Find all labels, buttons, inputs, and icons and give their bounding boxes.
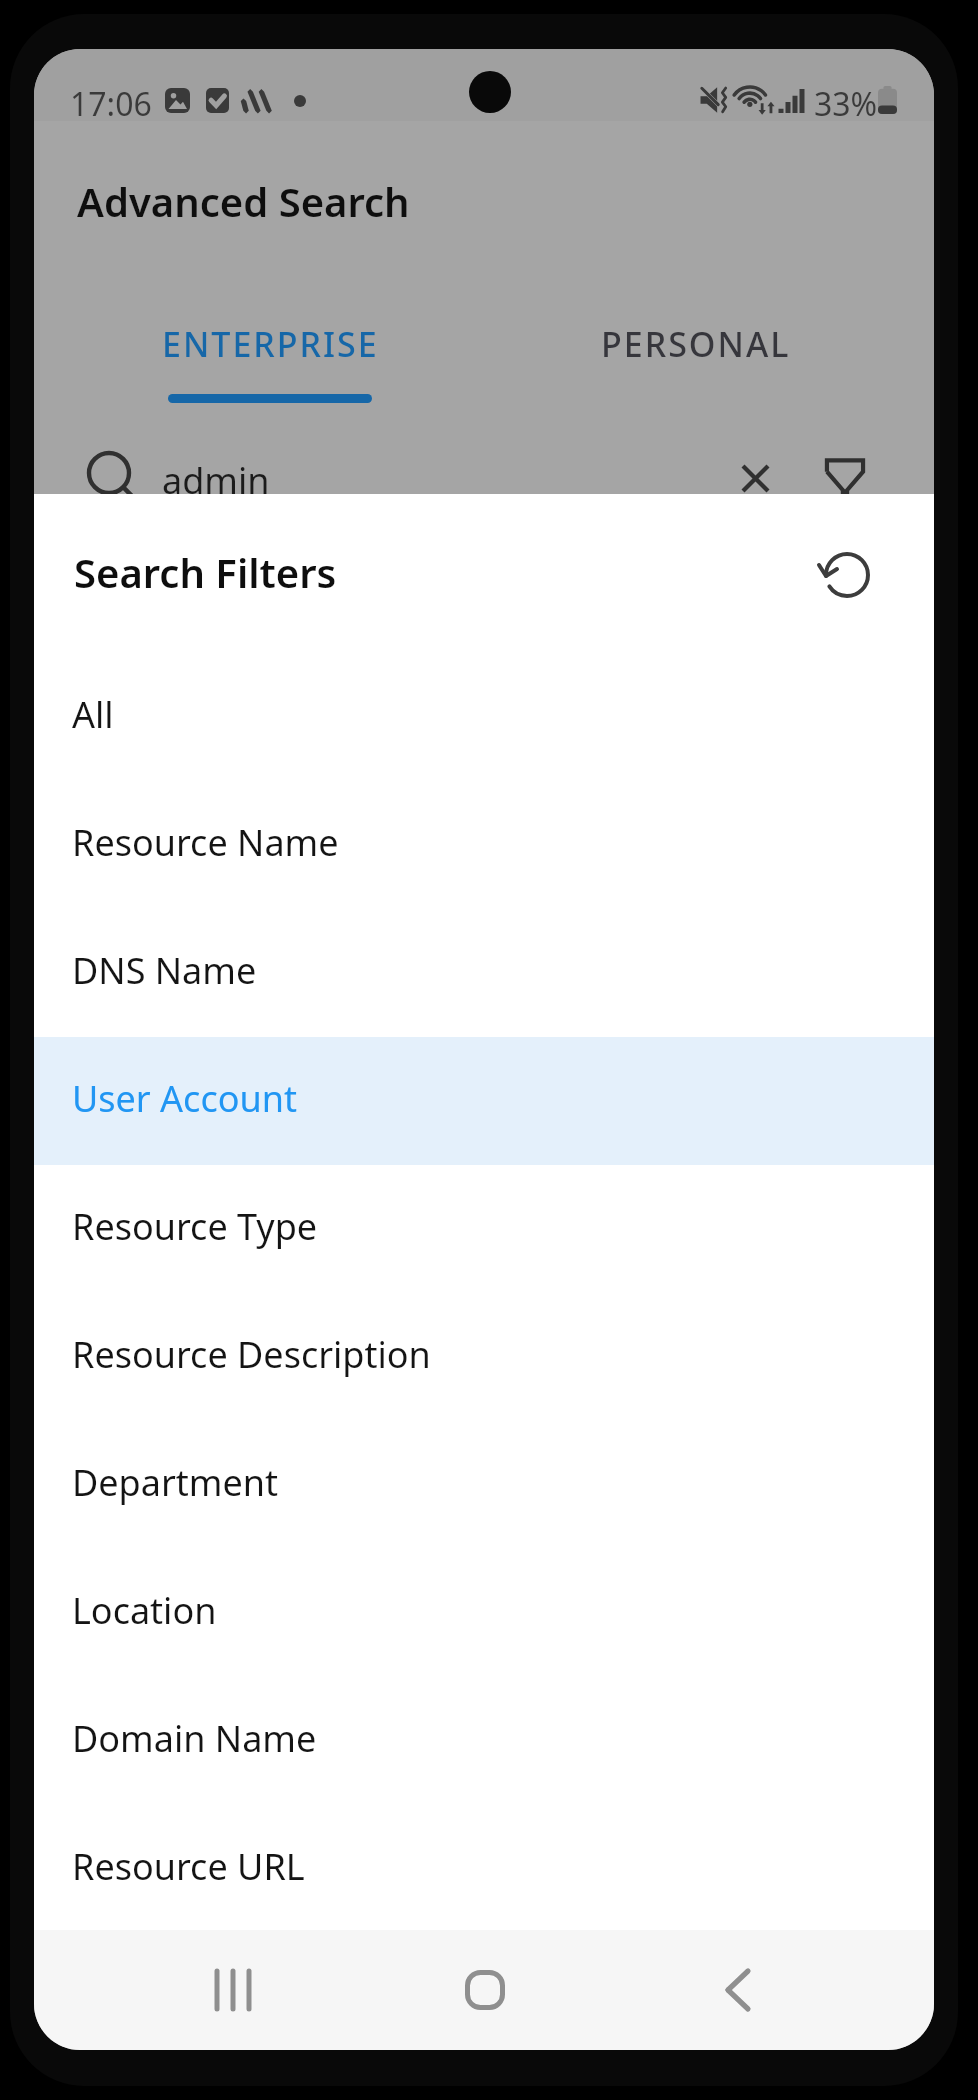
staticText: DNS Name	[72, 946, 257, 995]
staticText: Resource URL	[72, 1842, 305, 1891]
staticText: 33%	[814, 82, 878, 126]
button[interactable]: Resource Description	[34, 1293, 934, 1421]
staticText: Location	[72, 1586, 217, 1635]
button[interactable]: ENTERPRISE	[54, 299, 474, 403]
button[interactable]: Resource Name	[34, 781, 934, 909]
staticText: Department	[72, 1458, 278, 1507]
staticText: Search Filters	[74, 545, 337, 599]
button[interactable]: Reset filters	[813, 541, 881, 609]
staticText: PERSONAL	[601, 321, 791, 367]
button[interactable]: Location	[34, 1549, 934, 1677]
button[interactable]: Home	[445, 1950, 525, 2030]
staticText: Resource Type	[72, 1202, 318, 1251]
staticText: All	[72, 690, 114, 739]
staticText: Resource Name	[72, 818, 339, 867]
button[interactable]: Domain Name	[34, 1677, 934, 1805]
button[interactable]: Back	[698, 1950, 778, 2030]
staticText: Resource Description	[72, 1330, 431, 1379]
button[interactable]: Department	[34, 1421, 934, 1549]
button[interactable]: Resource URL	[34, 1805, 934, 1933]
staticText: 17:06	[70, 82, 152, 126]
button[interactable]: DNS Name	[34, 909, 934, 1037]
button[interactable]: PERSONAL	[494, 299, 914, 403]
button[interactable]: Resource Type	[34, 1165, 934, 1293]
button[interactable]: User Account	[34, 1037, 934, 1165]
staticText: Advanced Search	[77, 174, 410, 228]
button[interactable]: All	[34, 653, 934, 781]
button[interactable]: Recent apps	[193, 1950, 273, 2030]
staticText: User Account	[72, 1074, 297, 1123]
staticText: ENTERPRISE	[162, 321, 379, 367]
staticText: Domain Name	[72, 1714, 317, 1763]
staticText: admin	[162, 456, 270, 505]
